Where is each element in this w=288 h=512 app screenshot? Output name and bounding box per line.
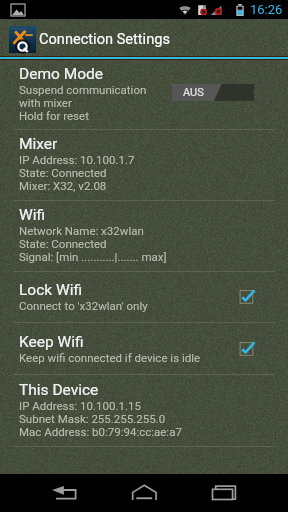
- button[interactable]: Enabled: [238, 288, 260, 310]
- staticText: Hold for reset: [19, 109, 89, 122]
- button[interactable]: Wifi: [0, 201, 288, 271]
- staticText: IP Address: 10.100.1.7: [19, 153, 135, 166]
- staticText: Keep Wifi: [19, 333, 84, 351]
- staticText: Connect to 'x32wlan' only: [19, 299, 148, 312]
- staticText: Demo Mode: [19, 65, 104, 83]
- staticText: Mac Address: b0:79:94:cc:ae:a7: [19, 425, 182, 438]
- staticText: with mixer: [19, 96, 72, 109]
- staticText: Network Name: x32wlan: [19, 224, 144, 237]
- staticText: 16:26: [250, 2, 283, 17]
- staticText: Mixer: [19, 135, 58, 153]
- staticText: AUS: [183, 86, 204, 99]
- staticText: Wifi: [19, 206, 46, 224]
- staticText: Signal: [min ...........|....... max]: [19, 250, 167, 263]
- staticText: This Device: [19, 381, 99, 399]
- button[interactable]: Mixer: [0, 130, 288, 200]
- button[interactable]: Demo Mode toggle: [172, 84, 254, 101]
- staticText: IP Address: 10.100.1.15: [19, 399, 141, 412]
- button[interactable]: Home: [108, 474, 180, 512]
- button[interactable]: Back: [28, 474, 100, 512]
- button[interactable]: Lock Wifi: [0, 272, 288, 322]
- button[interactable]: Recents: [188, 474, 260, 512]
- staticText: Connection Settings: [39, 30, 170, 47]
- staticText: Lock Wifi: [19, 281, 83, 299]
- staticText: Keep wifi connected if device is idle: [19, 351, 201, 364]
- staticText: Mixer: X32, v2.08: [19, 179, 107, 192]
- button[interactable]: This Device: [0, 375, 288, 446]
- button[interactable]: Demo Mode: [0, 60, 288, 129]
- staticText: Suspend communication: [19, 83, 147, 96]
- button[interactable]: Keep Wifi: [0, 323, 288, 374]
- staticText: State: Connected: [19, 237, 107, 250]
- staticText: Subnet Mask: 255.255.255.0: [19, 412, 166, 425]
- button[interactable]: Enabled: [238, 340, 260, 362]
- staticText: State: Connected: [19, 166, 107, 179]
